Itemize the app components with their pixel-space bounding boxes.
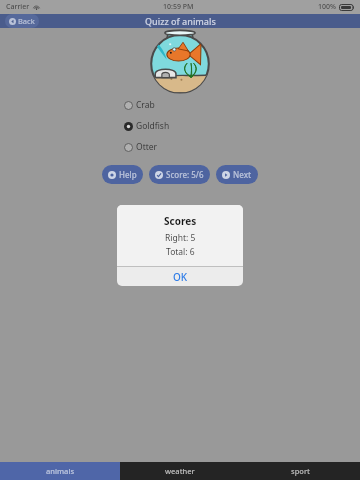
staticText: Goldfish [136, 120, 170, 132]
staticText: weather [165, 466, 195, 476]
button[interactable]: Back [5, 14, 39, 28]
button[interactable]: Otter [124, 141, 236, 153]
button[interactable]: Crab [124, 99, 236, 111]
staticText: Scores [164, 214, 197, 228]
button[interactable]: OK [117, 267, 243, 286]
button[interactable]: Goldfish [124, 120, 236, 132]
staticText: Quizz of animals [145, 15, 216, 27]
staticText: 10:59 PM [163, 2, 194, 12]
other: Help [108, 171, 116, 179]
staticText: 100% [318, 2, 336, 12]
button[interactable]: sport [240, 462, 360, 480]
staticText: Carrier [6, 2, 30, 12]
staticText: Next [233, 169, 252, 180]
staticText: Back [18, 16, 35, 26]
staticText: Crab [136, 99, 155, 111]
staticText: sport [291, 466, 310, 476]
other: Goldfish in a bowl [148, 29, 212, 87]
staticText: animals [46, 466, 75, 476]
staticText: Total: 6 [166, 246, 195, 258]
button[interactable]: animals [0, 462, 120, 480]
staticText: Otter [136, 141, 158, 153]
button[interactable]: Help [102, 165, 143, 184]
staticText: Score: 5/6 [166, 169, 204, 180]
staticText: Right: 5 [165, 232, 196, 244]
button[interactable]: Score [149, 165, 210, 184]
staticText: OK [173, 270, 188, 284]
other: Score [155, 171, 163, 179]
button[interactable]: weather [120, 462, 240, 480]
button[interactable]: Next [216, 165, 258, 184]
staticText: Help [119, 169, 137, 180]
other: Next [222, 171, 230, 179]
